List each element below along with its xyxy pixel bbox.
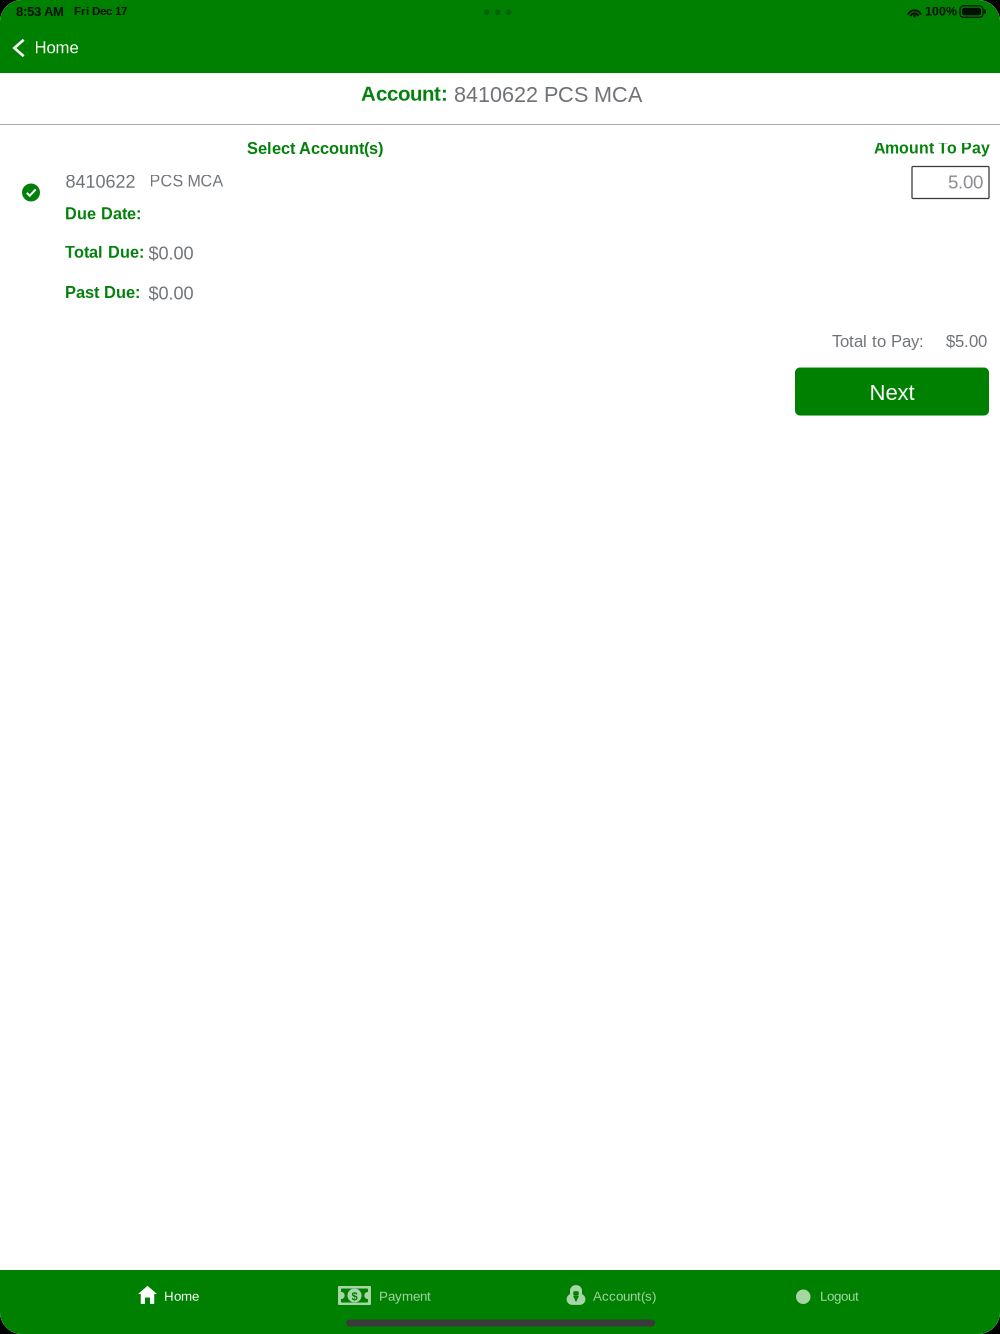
staticText: $0.00 — [148, 283, 193, 303]
button[interactable]: Logout — [796, 1279, 876, 1323]
staticText: Total Due: — [65, 243, 144, 261]
staticText: Home — [34, 38, 78, 57]
staticText: PCS MCA — [149, 172, 223, 190]
staticText: $0.00 — [148, 243, 193, 263]
staticText: 100% — [925, 4, 957, 18]
staticText: Select Account(s) — [247, 139, 383, 157]
staticText: Total to Pay: — [832, 332, 924, 351]
button[interactable]: Home — [0, 0, 100, 73]
staticText: Amount To Pay — [874, 139, 990, 157]
button[interactable]: Home — [120, 1279, 210, 1323]
staticText: Past Due: — [65, 283, 140, 301]
button[interactable]: Account(s) — [566, 1279, 681, 1323]
button[interactable]: 5.00 — [912, 166, 989, 198]
staticText: 8:53 AM — [16, 4, 64, 19]
staticText: 8410622 — [65, 171, 135, 191]
button[interactable]: $ — [338, 1279, 453, 1323]
staticText: $ — [351, 1290, 357, 1303]
staticText: Next — [869, 380, 914, 405]
button[interactable]: Select account 8410622 PCS MCA — [15, 171, 230, 201]
staticText: 5.00 — [948, 172, 983, 192]
staticText: Home — [164, 1289, 199, 1304]
staticText: Logout — [820, 1289, 859, 1304]
staticText: $5.00 — [946, 332, 987, 351]
staticText: 8410622 PCS MCA — [454, 82, 642, 107]
staticText: Due Date: — [65, 205, 141, 223]
staticText: Account(s) — [593, 1289, 656, 1304]
staticText: Fri Dec 17 — [74, 5, 127, 18]
staticText: Payment — [379, 1289, 431, 1304]
button[interactable]: Next — [795, 367, 989, 415]
staticText: Account: — [361, 82, 448, 105]
